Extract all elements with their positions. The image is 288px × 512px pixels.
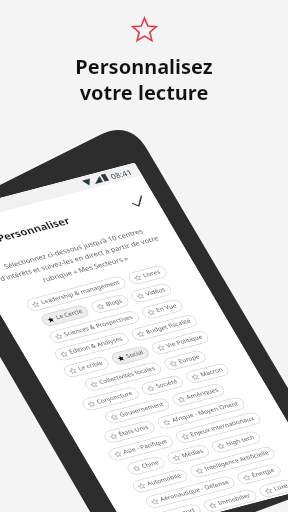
button[interactable]: Europe (158, 338, 211, 383)
staticText: En Vue (153, 296, 181, 320)
button[interactable]: Automobile (127, 453, 193, 509)
button[interactable]: Luxe (254, 469, 288, 508)
staticText: Budget fiscalité (142, 305, 195, 348)
button[interactable]: Sciences & Prospectives (44, 285, 145, 369)
staticText: Personnaliser (0, 193, 76, 264)
staticText: Enjeux internationaux (187, 397, 258, 456)
staticText: Macron (197, 360, 227, 385)
button[interactable]: Vidéos (126, 271, 177, 315)
button[interactable]: Macron (180, 351, 234, 396)
button[interactable]: Le crible (58, 343, 115, 391)
button[interactable]: Collectivités locales (79, 340, 167, 413)
staticText: Livres (139, 263, 165, 285)
button[interactable]: Leadership & management (21, 248, 131, 340)
staticText: Sélectionnez ci-dessous jusqu'à 10 centr… (0, 180, 173, 337)
staticText: Vie Politique (162, 323, 206, 360)
staticText: Sciences & Prospectives (60, 294, 137, 358)
button[interactable]: Valider (121, 187, 154, 216)
staticText: Asie - Pacifique (120, 425, 171, 468)
button[interactable]: Social (106, 335, 155, 376)
staticText: États-Unis (115, 415, 153, 447)
staticText: Énergie (248, 460, 279, 486)
staticText: Transport (163, 498, 199, 512)
staticText: High tech (223, 426, 259, 456)
staticText: Société (152, 372, 181, 396)
button[interactable]: Aéronautique - Défense (140, 450, 240, 512)
staticText: Chine (138, 454, 163, 475)
staticText: Europe (175, 347, 204, 371)
staticText: Intelligence Artificielle (201, 431, 273, 491)
staticText: Vidéos (142, 280, 169, 303)
button[interactable]: Asie - Pacifique (103, 416, 179, 480)
button[interactable]: Intelligence Artificielle (184, 422, 280, 502)
button[interactable]: Budget fiscalité (126, 296, 202, 360)
staticText: Leadership & management (37, 257, 124, 328)
button[interactable]: Transport (146, 489, 206, 512)
staticText: Luxe (270, 478, 288, 497)
button[interactable]: High tech (206, 417, 266, 467)
staticText: Social (122, 344, 147, 365)
staticText: Médias (178, 441, 207, 466)
staticText: Amériques (183, 377, 222, 410)
button[interactable]: Société (136, 363, 189, 408)
staticText: Collectivités locales (95, 349, 159, 402)
staticText: Blogs (102, 292, 127, 313)
button[interactable]: Conjoncture (77, 370, 144, 427)
staticText: Édition & Analyses (66, 320, 127, 371)
staticText: Le crible (74, 352, 107, 380)
button[interactable]: Le Cercle (36, 291, 94, 340)
button[interactable]: Amériques (167, 368, 230, 422)
button[interactable]: États-Unis (99, 406, 160, 458)
button[interactable]: Enjeux internationaux (170, 388, 266, 468)
staticText: Aéronautique - Défense (157, 459, 233, 512)
button[interactable]: Blogs (86, 283, 134, 324)
button[interactable]: Gouvernement (99, 379, 175, 442)
button[interactable]: Chine (122, 445, 170, 486)
button[interactable]: Afrique - Moyen Orient (152, 372, 250, 454)
staticText: Conjoncture (93, 379, 137, 416)
staticText: Afrique - Moyen Orient (168, 381, 243, 443)
button[interactable]: Vie Politique (146, 314, 214, 371)
staticText: Personnalisez votre lecture (75, 53, 213, 106)
button[interactable]: Immobilier (198, 474, 262, 512)
staticText: Automobile (143, 462, 185, 497)
button[interactable]: Énergie (232, 451, 286, 497)
staticText: Immobilier (214, 483, 255, 512)
staticText: 08:41 (106, 161, 136, 187)
button[interactable]: Édition & Analyses (49, 311, 134, 382)
staticText: Le Cercle (52, 300, 86, 329)
button[interactable]: Médias (162, 432, 215, 477)
button[interactable]: En Vue (136, 287, 188, 331)
staticText: Gouvernement (116, 388, 167, 431)
button[interactable]: Livres (123, 254, 172, 296)
